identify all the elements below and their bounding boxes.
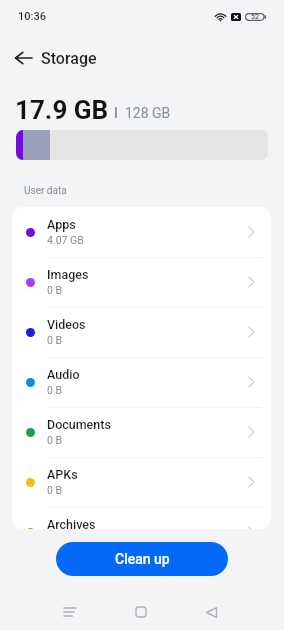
staticText: Audio [47,367,80,382]
staticText: Storage [41,49,97,68]
staticText: 0 B [47,434,63,446]
button[interactable]: Videos [12,307,271,357]
button[interactable]: Clean up [56,542,228,576]
staticText: 17.9 GB [15,95,109,125]
staticText: APKs [47,467,78,482]
staticText: 0 B [47,334,63,346]
staticText: 128 GB [125,105,171,121]
staticText: 52 [251,13,259,21]
staticText: Archives [47,517,96,529]
button[interactable]: Back [193,594,229,630]
staticText: Documents [47,417,111,432]
staticText: 4.07 GB [47,234,84,246]
staticText: 0 B [47,484,63,496]
button[interactable]: Back [9,44,37,72]
button[interactable]: APKs [12,457,271,507]
staticText: Clean up [115,551,170,567]
button[interactable]: Images [12,257,271,307]
button[interactable]: Documents [12,407,271,457]
staticText: Videos [47,317,86,332]
staticText: Images [47,267,89,282]
button[interactable]: Archives [12,507,271,529]
button[interactable]: Recent apps [52,594,88,630]
staticText: 0 B [47,384,63,396]
button[interactable]: Audio [12,357,271,407]
staticText: 0 B [47,284,63,296]
staticText: Apps [47,217,76,232]
staticText: 10:36 [18,10,46,23]
button[interactable]: Home [123,594,159,630]
button[interactable]: Apps [12,207,271,257]
staticText: User data [24,185,67,197]
